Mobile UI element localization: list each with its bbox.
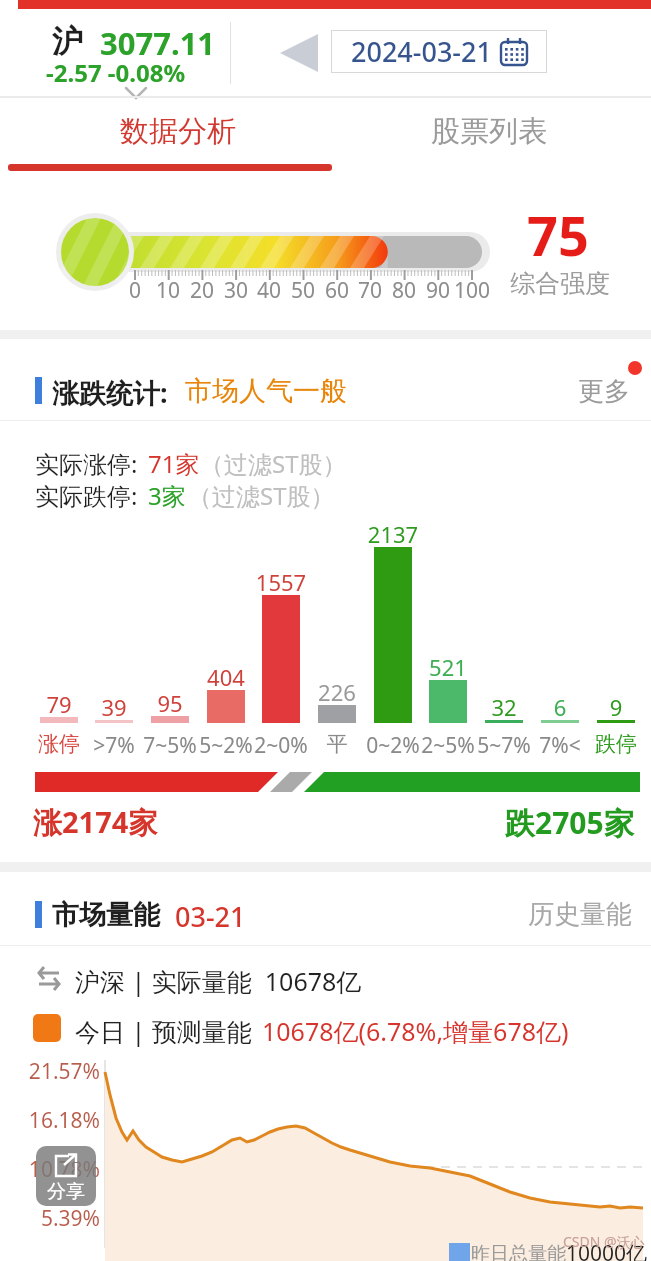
staticText: 2137 xyxy=(353,519,433,549)
staticText: 7~5% xyxy=(130,731,210,760)
staticText: 90 xyxy=(413,276,463,305)
staticText: 50 xyxy=(278,276,328,305)
staticText: -2.57 -0.08% xyxy=(46,56,186,89)
staticText: 79 xyxy=(19,689,99,719)
staticText: 2~5% xyxy=(408,731,488,760)
staticText: 昨日总量能 xyxy=(471,1242,566,1261)
staticText: 21.57% xyxy=(10,1057,100,1086)
staticText: 5~7% xyxy=(464,731,544,760)
staticText: 更多 xyxy=(578,375,630,408)
staticText: 分享 xyxy=(47,1180,85,1204)
staticText: 2024-03-21 xyxy=(351,33,492,70)
staticText: 39 xyxy=(74,692,154,722)
button[interactable]: 历史量能 xyxy=(520,888,645,933)
staticText: 跌2705家 xyxy=(505,802,634,843)
button[interactable]: 数据分析 xyxy=(15,98,340,164)
staticText: 涨停 xyxy=(19,731,99,757)
staticText: 5.39% xyxy=(10,1204,100,1233)
staticText: 20 xyxy=(177,276,227,305)
button[interactable]: 2024-03-21 xyxy=(331,30,547,73)
staticText: 16.18% xyxy=(10,1106,100,1135)
staticText: 100 xyxy=(447,276,497,305)
staticText: 沪 xyxy=(52,22,83,61)
staticText: 10.78% xyxy=(10,1155,100,1184)
staticText: 95 xyxy=(130,688,210,718)
staticText: 2~0% xyxy=(241,731,321,760)
staticText: 521 xyxy=(408,652,488,682)
staticText: 60 xyxy=(312,276,362,305)
staticText: 32 xyxy=(464,692,544,722)
staticText: 沪深 | 实际量能 10678亿 xyxy=(75,964,362,998)
button[interactable] xyxy=(280,34,318,72)
staticText: 404 xyxy=(186,662,266,692)
staticText: CSDN @沃心 xyxy=(563,1232,645,1251)
staticText: 涨2174家 xyxy=(33,802,158,842)
staticText: 10000亿 xyxy=(566,1239,648,1261)
staticText: 实际跌停: xyxy=(35,479,138,512)
staticText: 75 xyxy=(527,198,589,272)
staticText: 3家 xyxy=(148,479,186,512)
staticText: 1557 xyxy=(241,567,321,597)
staticText: 40 xyxy=(244,276,294,305)
staticText: 80 xyxy=(379,276,429,305)
button[interactable]: 分享 xyxy=(36,1146,96,1206)
staticText: 30 xyxy=(211,276,261,305)
staticText: （过滤ST股） xyxy=(188,479,335,512)
staticText: 0 xyxy=(110,276,160,305)
staticText: 6 xyxy=(520,692,600,722)
button[interactable]: 更多 xyxy=(570,360,645,405)
staticText: 03-21 xyxy=(175,898,246,935)
staticText: （过滤ST股） xyxy=(200,447,347,480)
staticText: 7%< xyxy=(520,731,600,760)
staticText: 70 xyxy=(345,276,395,305)
staticText: 71家 xyxy=(148,447,200,480)
staticText: 9 xyxy=(576,692,651,722)
staticText: 10 xyxy=(143,276,193,305)
button[interactable]: 股票列表 xyxy=(326,98,651,164)
staticText: 历史量能 xyxy=(528,898,632,931)
staticText: 3077.11 xyxy=(100,22,216,64)
staticText: 市场量能 xyxy=(52,898,160,932)
staticText: 数据分析 xyxy=(120,113,236,150)
staticText: 市场人气一般 xyxy=(185,374,347,408)
staticText: 226 xyxy=(297,677,377,707)
staticText: 涨跌统计: xyxy=(52,374,168,411)
staticText: 今日 | 预测量能 xyxy=(75,1014,259,1048)
staticText: >7% xyxy=(74,731,154,760)
staticText: 0~2% xyxy=(353,731,433,760)
staticText: 10678亿(6.78%,增量678亿) xyxy=(262,1014,569,1048)
staticText: 5~2% xyxy=(186,731,266,760)
staticText: 跌停 xyxy=(576,731,651,757)
staticText: 综合强度 xyxy=(510,268,610,299)
staticText: 平 xyxy=(297,731,377,757)
staticText: 实际涨停: xyxy=(35,447,138,480)
staticText: 股票列表 xyxy=(431,113,547,150)
